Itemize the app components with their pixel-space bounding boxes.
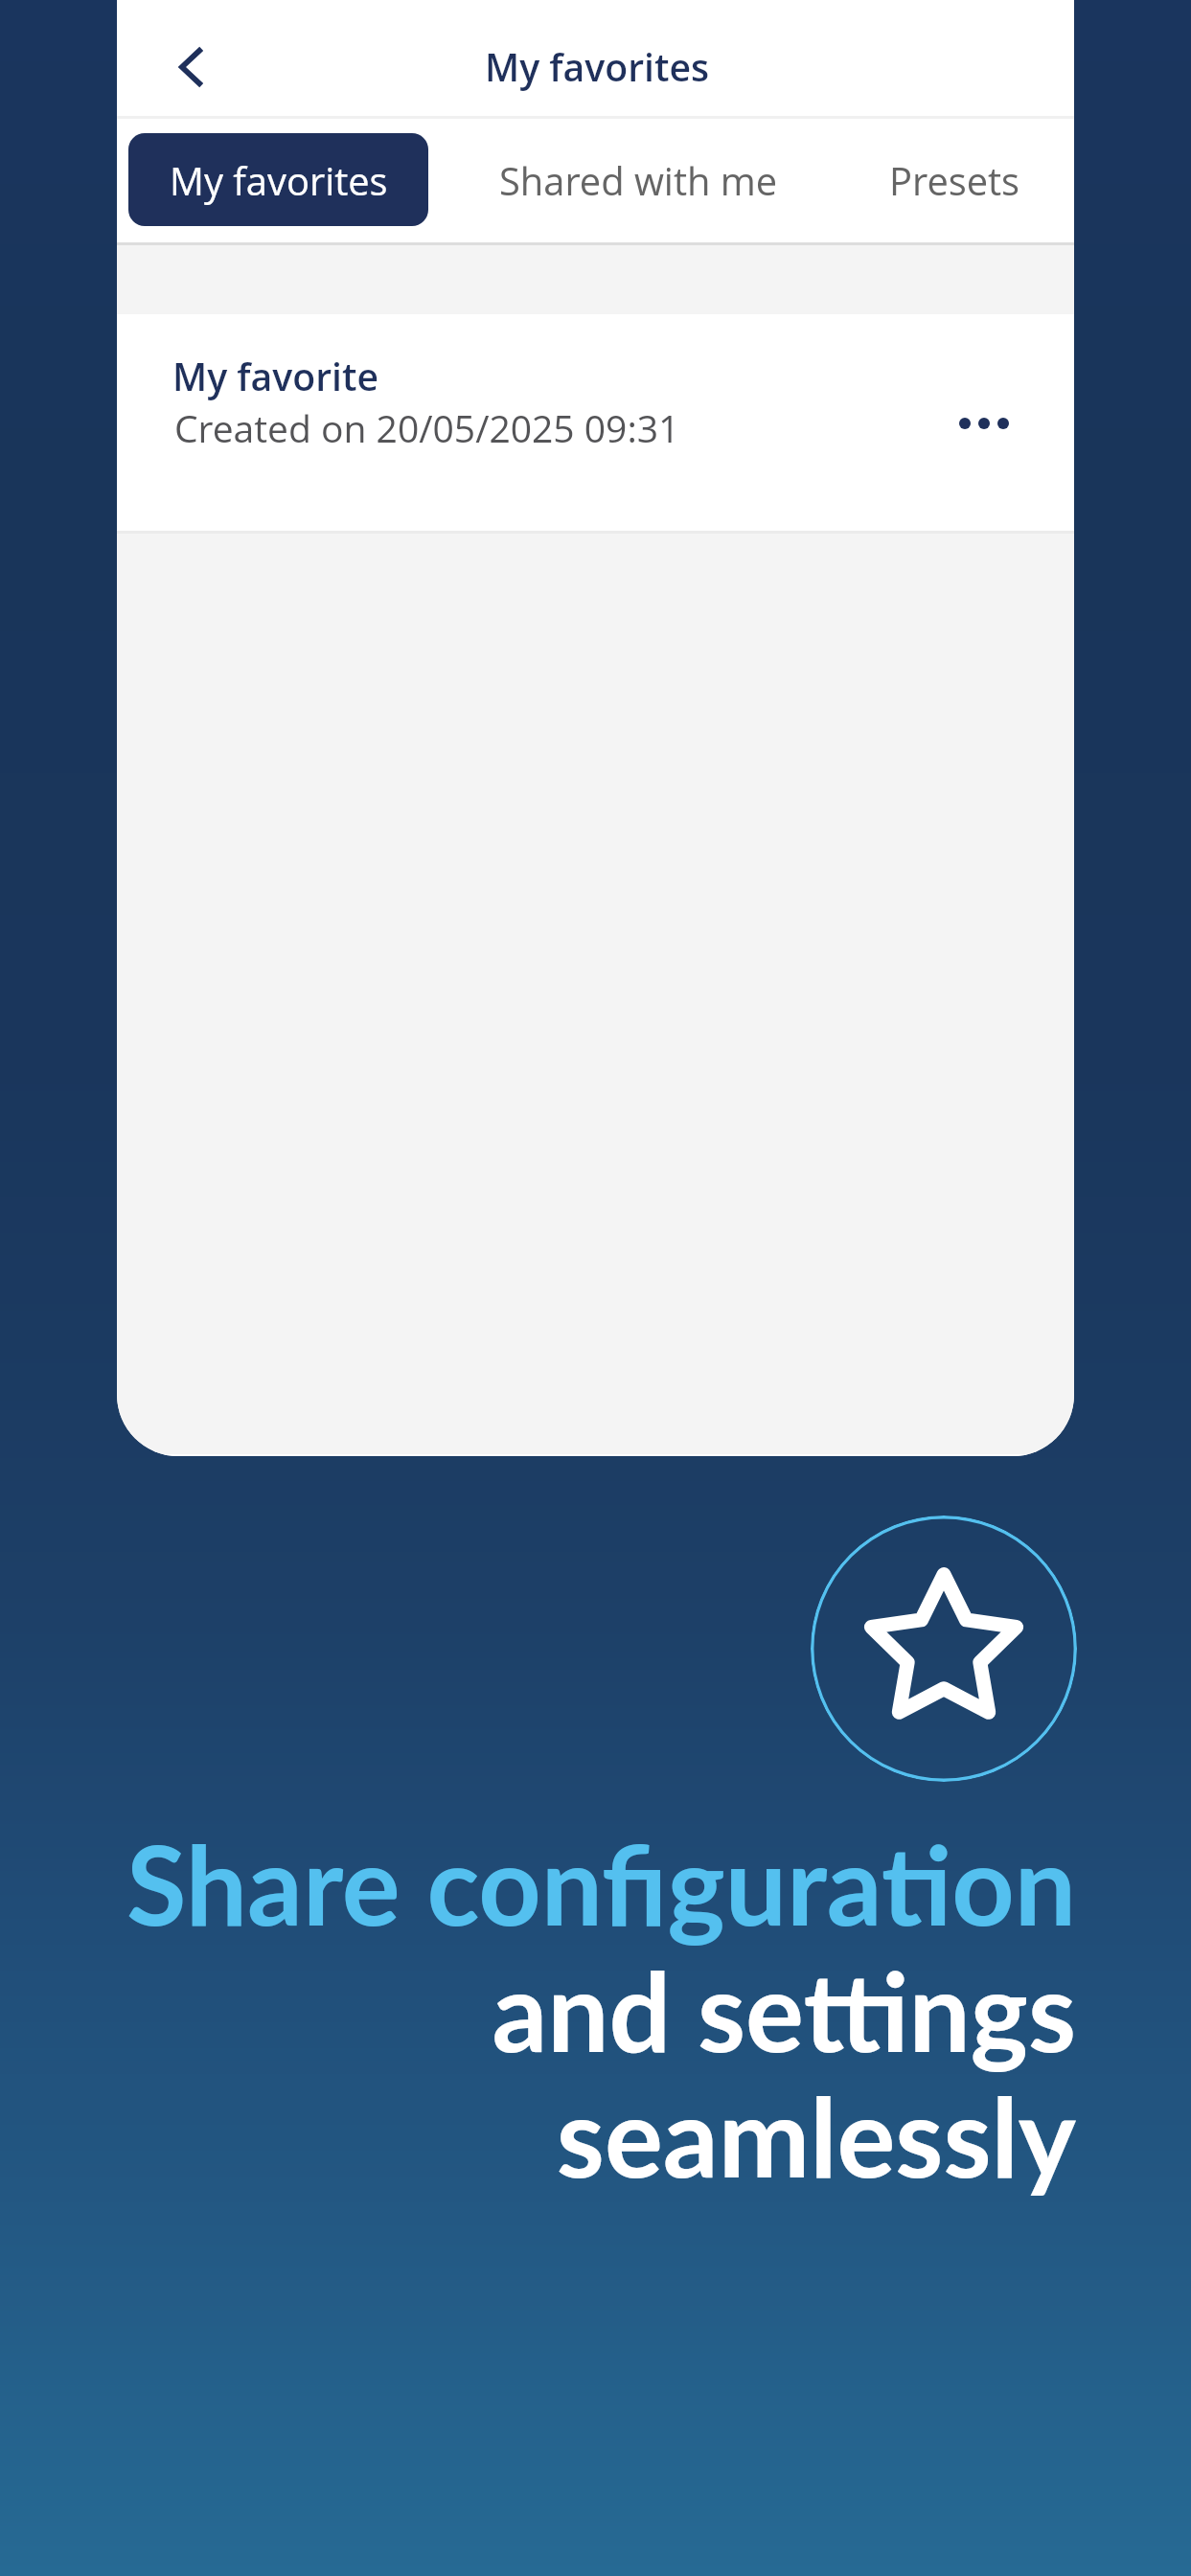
button[interactable]: Presets bbox=[854, 133, 1055, 226]
staticText: seamlessly bbox=[57, 2069, 1076, 2200]
button[interactable]: More options bbox=[927, 366, 1042, 481]
button[interactable]: Shared with me bbox=[480, 133, 796, 226]
staticText: Presets bbox=[889, 154, 1020, 206]
button[interactable]: Favorite bbox=[811, 1516, 1077, 1782]
staticText: and settings bbox=[57, 1944, 1076, 2075]
staticText: Share configuration bbox=[57, 1817, 1076, 1949]
staticText: Shared with me bbox=[499, 154, 778, 206]
staticText: My favorite bbox=[172, 351, 379, 401]
staticText: My favorites bbox=[170, 154, 388, 206]
staticText: Created on 20/05/2025 09:31 bbox=[174, 402, 680, 453]
staticText: My favorites bbox=[485, 41, 710, 92]
button[interactable]: Back bbox=[149, 29, 232, 105]
button[interactable]: My favorites bbox=[128, 133, 428, 226]
button[interactable]: My favorite bbox=[117, 314, 1074, 531]
